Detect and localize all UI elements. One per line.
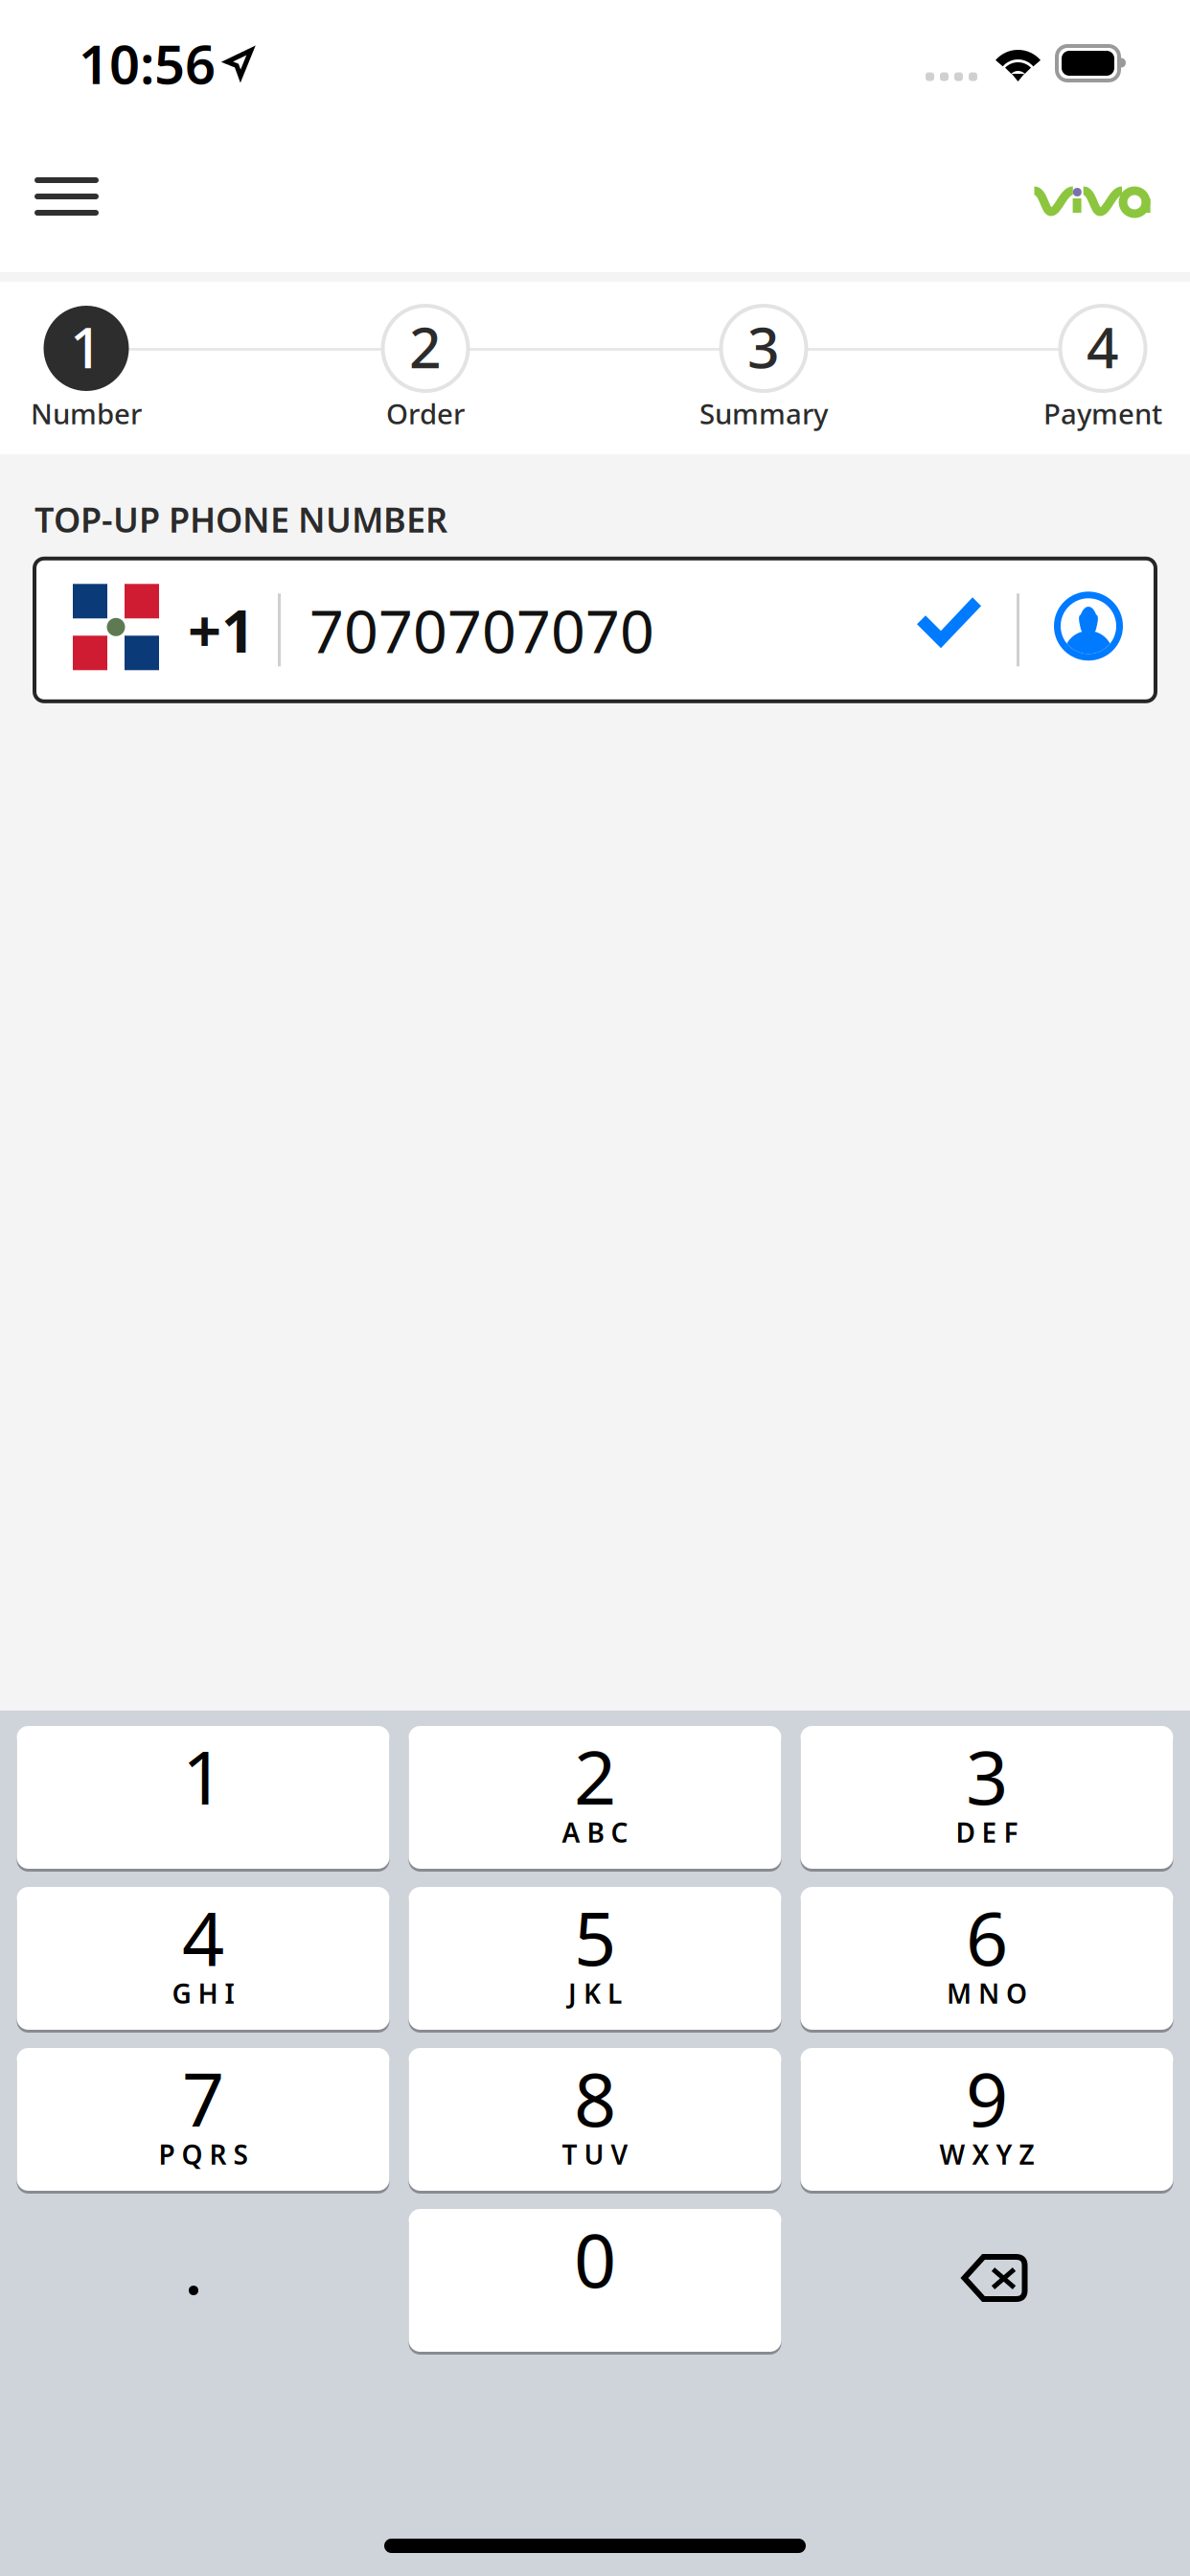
button[interactable]: 4: [17, 1887, 389, 2033]
staticText: 4: [182, 1888, 224, 1986]
staticText: 0: [574, 2210, 616, 2308]
staticText: 10:56: [79, 28, 216, 99]
staticText: 2: [574, 1727, 616, 1825]
button[interactable]: 3: [801, 1726, 1173, 1872]
staticText: 1: [70, 309, 103, 384]
staticText: Summary: [699, 395, 828, 432]
button[interactable]: Viva: [1037, 184, 1154, 215]
button[interactable]: 1: [17, 1726, 389, 1872]
button[interactable]: Menu: [8, 147, 122, 252]
staticText: M N O: [947, 1976, 1027, 2011]
staticText: Number: [31, 395, 142, 432]
staticText: Payment: [1043, 395, 1162, 432]
button[interactable]: 2: [409, 1726, 781, 1872]
button[interactable]: 2: [310, 306, 540, 459]
staticText: D E F: [956, 1815, 1018, 1850]
button[interactable]: 0: [409, 2209, 781, 2355]
staticText: 2: [409, 309, 442, 384]
staticText: G H I: [172, 1976, 234, 2011]
staticText: J K L: [568, 1976, 622, 2011]
button[interactable]: Decimal point: [17, 2209, 389, 2355]
staticText: Order: [386, 395, 465, 432]
button[interactable]: 1: [0, 306, 201, 459]
staticText: A B C: [562, 1815, 628, 1850]
button[interactable]: 3: [649, 306, 879, 459]
button[interactable]: +1: [0, 559, 1156, 701]
button[interactable]: 7: [17, 2048, 389, 2194]
staticText: 4: [1087, 309, 1119, 384]
staticText: TOP-UP PHONE NUMBER: [34, 496, 447, 542]
staticText: 3: [966, 1727, 1008, 1825]
button[interactable]: 5: [409, 1887, 781, 2033]
staticText: T U V: [562, 2137, 628, 2172]
staticText: 7070707070: [309, 590, 654, 670]
staticText: 1: [182, 1727, 224, 1825]
staticText: W X Y Z: [939, 2137, 1034, 2172]
staticText: 7: [182, 2049, 224, 2147]
staticText: P Q R S: [159, 2137, 248, 2172]
button[interactable]: 9: [801, 2048, 1173, 2194]
button[interactable]: 6: [801, 1887, 1173, 2033]
button[interactable]: Delete: [801, 2209, 1173, 2355]
staticText: +1: [188, 591, 255, 669]
button[interactable]: 4: [988, 306, 1190, 459]
staticText: 6: [966, 1888, 1008, 1986]
button[interactable]: 8: [409, 2048, 781, 2194]
staticText: 3: [747, 309, 780, 384]
staticText: 8: [574, 2049, 616, 2147]
staticText: 9: [966, 2049, 1008, 2147]
staticText: 5: [574, 1888, 616, 1986]
